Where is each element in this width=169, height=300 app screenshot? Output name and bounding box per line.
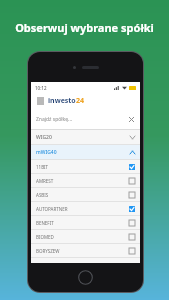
staticText: BENEFIT	[36, 220, 54, 226]
button[interactable]: AMREST	[31, 174, 140, 187]
button[interactable]: mWIG40	[31, 145, 140, 159]
staticText: AMREST	[36, 178, 54, 184]
staticText: WIG20	[36, 134, 52, 141]
button[interactable]: Clear search	[127, 115, 135, 123]
staticText: mWIG40	[36, 149, 57, 156]
staticText: inwesto	[48, 96, 76, 106]
staticText: Znajdź spółkę...	[36, 116, 73, 123]
staticText: 10:12	[35, 85, 47, 91]
button[interactable]: BIOMED	[31, 230, 140, 243]
button[interactable]: ASBIS	[31, 188, 140, 201]
button[interactable]: Open menu	[35, 96, 45, 106]
staticText: ASBIS	[36, 192, 49, 198]
staticText: BIOMED	[36, 234, 54, 240]
staticText: 11BIT	[36, 164, 49, 170]
staticText: BORYSZEW	[36, 248, 60, 254]
button[interactable]: BORYSZEW	[31, 244, 140, 257]
button[interactable]: WIG20	[31, 130, 140, 144]
button[interactable]: BENEFIT	[31, 216, 140, 229]
staticText: Obserwuj wybrane spółki	[0, 20, 169, 35]
button[interactable]: 11BIT	[31, 160, 140, 173]
staticText: AUTOPARTNER	[36, 206, 68, 212]
staticText: 24	[76, 96, 85, 106]
button[interactable]: Znajdź spółkę...	[31, 109, 140, 129]
button[interactable]: AUTOPARTNER	[31, 202, 140, 215]
